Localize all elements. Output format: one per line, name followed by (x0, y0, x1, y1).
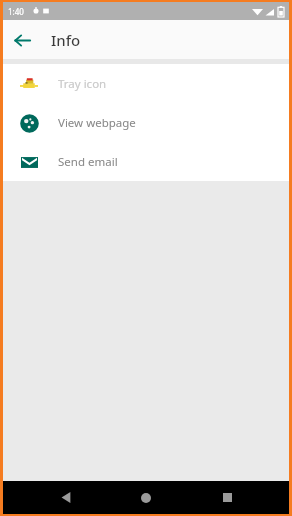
staticText: Info (51, 30, 81, 50)
staticText: Send email (58, 154, 118, 170)
button[interactable]: Recent apps (209, 481, 245, 514)
button[interactable]: Tray icon (3, 64, 289, 103)
staticText: Tray icon (58, 76, 107, 92)
button[interactable]: View webpage (3, 103, 289, 142)
button[interactable]: Send email (3, 142, 289, 181)
staticText: 1:40 (8, 6, 24, 17)
staticText: View webpage (58, 115, 136, 131)
button[interactable]: Home (128, 481, 164, 514)
button[interactable]: Back (48, 481, 84, 514)
button[interactable]: Back (3, 21, 41, 59)
